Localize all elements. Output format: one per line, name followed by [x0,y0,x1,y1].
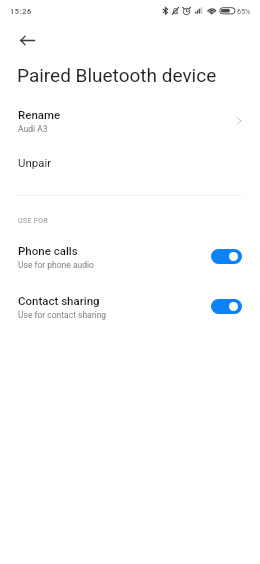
staticText: Unpair [18,156,52,169]
staticText: Use for contact sharing [18,310,107,320]
staticText: Paired Bluetooth device [17,64,217,86]
staticText: USE FOR [18,216,48,224]
button[interactable]: Navigate up [14,27,41,54]
staticText: Contact sharing [18,294,100,307]
staticText: Use for phone audio [18,260,94,270]
button[interactable]: Phone calls [0,239,260,274]
staticText: 15:26 [10,7,32,16]
staticText: Audi A3 [18,124,48,134]
staticText: 65% [237,7,251,15]
button[interactable]: Unpair [0,147,260,177]
button[interactable]: Contact sharing [0,289,260,324]
button[interactable]: Rename [0,100,260,141]
staticText: Rename [18,108,61,121]
staticText: Phone calls [18,244,78,257]
